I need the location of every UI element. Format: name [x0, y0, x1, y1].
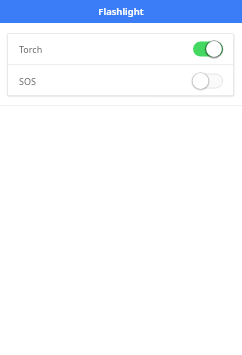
staticText: Flashlight: [98, 5, 144, 18]
staticText: SOS: [19, 75, 36, 87]
button[interactable]: SOS: [7, 65, 234, 96]
staticText: Torch: [19, 43, 43, 55]
button[interactable]: Torch: [7, 33, 234, 64]
button[interactable]: Torch on: [191, 38, 225, 60]
button[interactable]: SOS off: [191, 70, 225, 92]
